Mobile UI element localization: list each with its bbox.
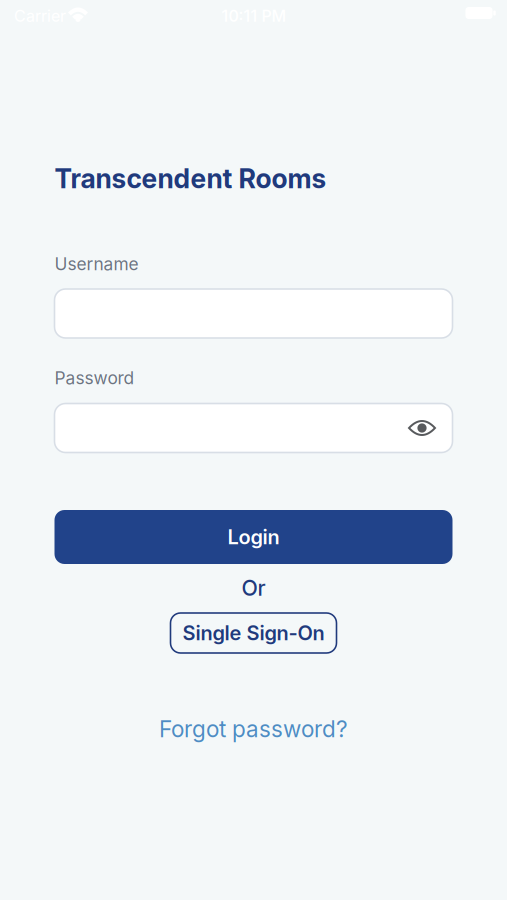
staticText: Transcendent Rooms: [54, 162, 326, 195]
staticText: Password: [54, 367, 134, 388]
staticText: Or: [241, 575, 265, 601]
staticText: Single Sign-On: [182, 621, 324, 645]
button[interactable]: Show password: [408, 419, 452, 436]
staticText: 10:11 PM: [221, 6, 286, 26]
button[interactable]: Username: [54, 289, 452, 338]
button[interactable]: Forgot password?: [159, 712, 348, 746]
staticText: Username: [54, 253, 138, 274]
staticText: Carrier: [14, 6, 66, 26]
button[interactable]: Login: [54, 510, 452, 564]
staticText: Forgot password?: [159, 715, 348, 743]
button[interactable]: Password: [54, 403, 452, 452]
button[interactable]: Single Sign-On: [170, 613, 336, 653]
staticText: Login: [227, 525, 279, 549]
